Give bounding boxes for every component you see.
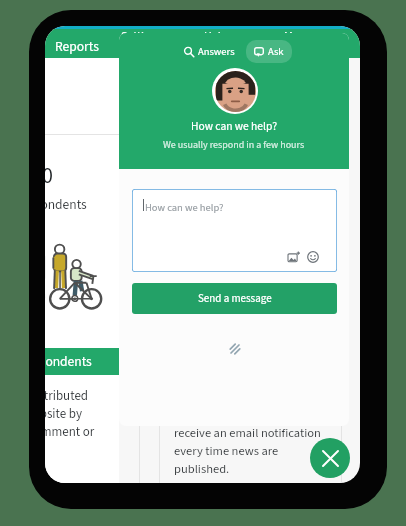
staticText: published. xyxy=(174,460,230,478)
button[interactable]: Help xyxy=(204,28,228,45)
staticText: respondents xyxy=(45,195,87,214)
button[interactable]: Ask xyxy=(246,40,292,63)
button[interactable]: Settings xyxy=(121,28,162,45)
staticText: comment or xyxy=(45,423,95,442)
staticText: contributed to a xyxy=(45,387,98,425)
staticText: Answers xyxy=(198,44,235,59)
staticText: More xyxy=(284,28,310,45)
staticText: 10 xyxy=(45,160,53,191)
staticText: We usually respond in a few hours xyxy=(163,138,305,152)
staticText: every time news are xyxy=(174,442,279,460)
button[interactable]: How can we help? xyxy=(132,189,337,272)
staticText: Settings xyxy=(121,28,162,45)
staticText: Help xyxy=(204,28,228,45)
staticText: respondents xyxy=(45,352,92,371)
button[interactable]: Send a message xyxy=(132,283,337,314)
button[interactable]: Answers xyxy=(177,40,242,63)
button[interactable]: Reports xyxy=(55,37,99,56)
staticText: How can we help? xyxy=(145,200,224,215)
button[interactable]: Close chat xyxy=(310,438,350,478)
staticText: receive an email notification xyxy=(174,424,321,442)
staticText: Ask xyxy=(268,44,284,59)
button[interactable]: Attach image xyxy=(288,251,300,263)
staticText: website by xyxy=(45,405,83,424)
button[interactable]: Emoji xyxy=(307,251,319,263)
staticText: How can we help? xyxy=(191,118,278,134)
button[interactable]: More xyxy=(284,28,310,45)
staticText: Send a message xyxy=(198,291,272,307)
